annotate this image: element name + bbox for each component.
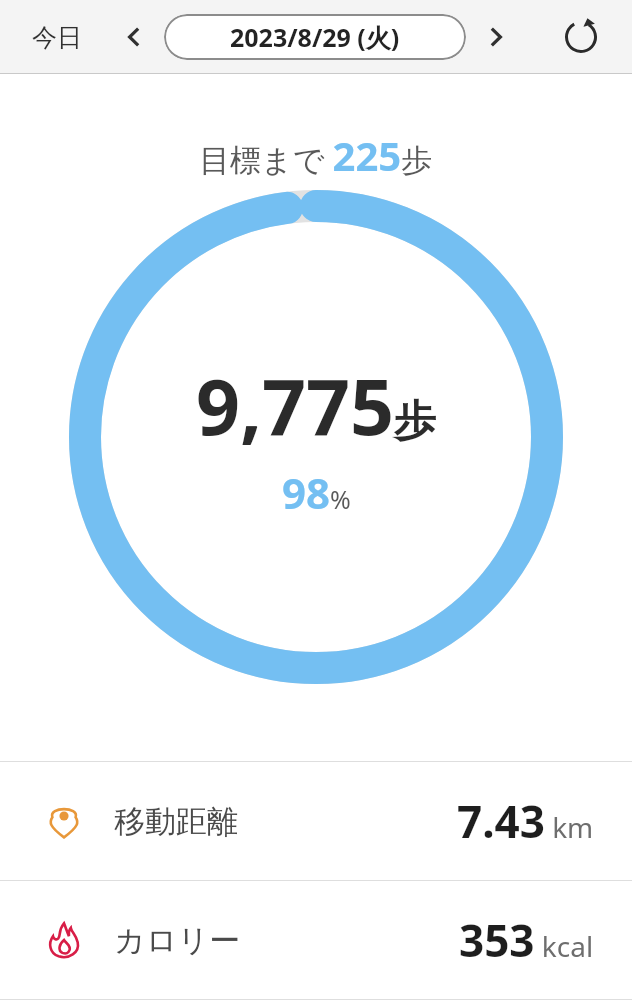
staticText: 353 kcal	[459, 910, 594, 970]
staticText: 2023/8/29 (火)	[230, 20, 400, 54]
staticText: 9,775歩	[196, 353, 437, 458]
button[interactable]: Previous day	[114, 17, 154, 57]
staticText: 移動距離	[114, 802, 238, 841]
button[interactable]: カロリー	[0, 881, 632, 999]
button[interactable]: 今日	[26, 14, 88, 61]
button[interactable]: 移動距離	[0, 762, 632, 880]
button[interactable]: Refresh	[554, 10, 608, 64]
staticText: 98%	[282, 464, 351, 521]
staticText: 今日	[32, 22, 82, 53]
staticText: 7.43 km	[457, 791, 594, 851]
button[interactable]: 2023/8/29 (火)	[164, 14, 466, 60]
staticText: 目標まで 225歩	[199, 128, 433, 182]
button[interactable]: Next day	[476, 17, 516, 57]
staticText: カロリー	[114, 921, 241, 960]
